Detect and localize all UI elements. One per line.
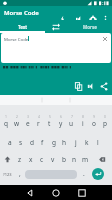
staticText: Morse [83, 24, 97, 30]
staticText: w [14, 119, 20, 128]
button[interactable]: l [92, 135, 103, 150]
button[interactable] [88, 80, 100, 92]
staticText: v [51, 155, 55, 164]
button[interactable]: Morse [67, 20, 112, 33]
button[interactable]: Morse Code [1, 33, 111, 63]
staticText: n [72, 155, 77, 164]
button[interactable]: h [59, 135, 70, 150]
button[interactable]: , [19, 169, 21, 178]
staticText: r [37, 119, 40, 128]
button[interactable]: 1 [0, 110, 11, 130]
button[interactable] [92, 168, 104, 180]
button[interactable]: 7 [66, 110, 77, 130]
staticText: 8 [82, 114, 84, 119]
staticText: k [85, 138, 89, 147]
button[interactable] [76, 80, 88, 92]
button[interactable]: v [47, 152, 58, 167]
button[interactable] [99, 33, 111, 45]
button[interactable]: . [83, 169, 85, 178]
staticText: s [19, 138, 23, 147]
button[interactable] [43, 185, 69, 200]
button[interactable]: k [81, 135, 92, 150]
staticText: Text [18, 24, 28, 30]
staticText: 2 [16, 114, 18, 119]
staticText: z [18, 155, 22, 164]
staticText: j [75, 138, 77, 147]
staticText: Morse Code [4, 36, 29, 42]
button[interactable]: 0 [99, 110, 110, 130]
staticText: t [48, 119, 51, 128]
button[interactable]: 8 [77, 110, 88, 130]
button[interactable]: 4 [33, 110, 44, 130]
button[interactable] [100, 6, 112, 18]
staticText: i [82, 119, 84, 128]
staticText: l [97, 138, 99, 147]
button[interactable] [25, 170, 77, 179]
button[interactable]: a [4, 135, 15, 150]
staticText: f [41, 138, 44, 147]
button[interactable]: ?123 [3, 172, 12, 177]
staticText: 0 [104, 114, 106, 119]
button[interactable]: x [25, 152, 36, 167]
staticText: x [29, 155, 33, 164]
button[interactable]: 6 [55, 110, 66, 130]
button[interactable] [0, 152, 14, 167]
staticText: 6 [60, 114, 62, 119]
button[interactable]: b [58, 152, 69, 167]
staticText: q [4, 119, 8, 128]
staticText: e [26, 119, 30, 128]
staticText: 4 [38, 114, 40, 119]
button[interactable]: g [48, 135, 59, 150]
button[interactable]: 9 [88, 110, 99, 130]
staticText: Morse Code [4, 9, 39, 17]
staticText: 5 [49, 114, 51, 119]
button[interactable]: c [36, 152, 47, 167]
button[interactable]: m [80, 152, 91, 167]
staticText: o [92, 119, 96, 128]
staticText: a [8, 138, 12, 147]
staticText: m [82, 155, 89, 164]
staticText: 1 [5, 114, 7, 119]
button[interactable]: 2 [11, 110, 22, 130]
button[interactable] [58, 6, 72, 20]
staticText: g [52, 138, 56, 147]
staticText: p [103, 119, 107, 128]
staticText: 9 [93, 114, 95, 119]
button[interactable]: 5 [44, 110, 55, 130]
staticText: d [30, 138, 34, 147]
button[interactable]: 3 [22, 110, 33, 130]
button[interactable] [100, 80, 112, 92]
button[interactable] [17, 185, 43, 200]
button[interactable]: f [37, 135, 48, 150]
button[interactable]: j [70, 135, 81, 150]
button[interactable]: d [26, 135, 37, 150]
button[interactable] [69, 185, 95, 200]
staticText: y [59, 119, 63, 128]
staticText: h [62, 138, 67, 147]
button[interactable] [72, 6, 86, 20]
staticText: b [62, 155, 66, 164]
button[interactable]: s [15, 135, 26, 150]
staticText: c [40, 155, 44, 164]
staticText: 3 [27, 114, 29, 119]
button[interactable]: z [14, 152, 25, 167]
staticText: 7 [71, 114, 73, 119]
button[interactable] [91, 152, 112, 167]
staticText: u [69, 119, 74, 128]
button[interactable] [86, 6, 100, 20]
button[interactable]: Text [0, 20, 45, 33]
button[interactable]: n [69, 152, 80, 167]
